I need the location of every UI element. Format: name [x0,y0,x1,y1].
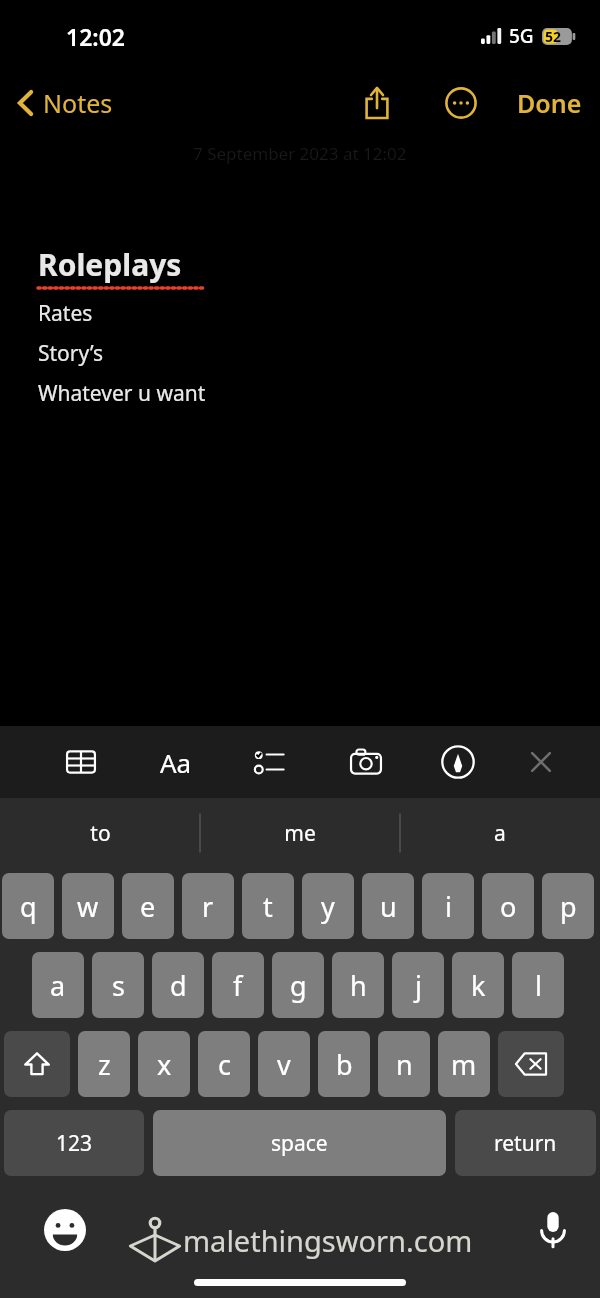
button[interactable]: space [153,1110,446,1176]
staticText: to [90,819,111,848]
button[interactable]: i [422,873,474,939]
staticText: b [336,1046,353,1083]
staticText: Aa [160,745,192,780]
staticText: r [202,888,214,925]
button[interactable]: Table [57,738,105,786]
button[interactable]: Notes [14,80,117,126]
staticText: e [140,888,156,925]
button[interactable]: Camera [342,738,390,786]
button[interactable]: d [152,952,204,1018]
staticText: return [494,1129,557,1158]
staticText: z [98,1046,111,1083]
staticText: 7 September 2023 at 12:02 [193,142,407,165]
button[interactable]: z [78,1031,130,1097]
button[interactable]: g [272,952,324,1018]
button[interactable]: t [242,873,294,939]
button[interactable]: 123 [4,1110,144,1176]
button[interactable]: f [212,952,264,1018]
staticText: 123 [56,1129,93,1158]
staticText: Rates [38,299,93,328]
staticText: Whatever u want [38,379,206,408]
button[interactable]: a [400,798,600,868]
staticText: o [500,888,517,925]
button[interactable]: More options [437,79,485,127]
staticText: w [77,888,99,925]
staticText: t [263,888,273,925]
staticText: 5G [509,23,534,49]
staticText: p [560,888,577,925]
button[interactable]: return [455,1110,596,1176]
staticText: j [415,967,422,1004]
button[interactable]: Checklist [246,738,294,786]
staticText: me [284,819,316,848]
staticText: g [290,967,307,1004]
button[interactable]: b [318,1031,370,1097]
staticText: 52 [545,27,562,46]
button[interactable]: Aa [152,738,200,786]
button[interactable]: k [452,952,504,1018]
button[interactable]: x [138,1031,190,1097]
staticText: h [350,967,367,1004]
button[interactable]: s [92,952,144,1018]
staticText: m [451,1046,477,1083]
staticText: malethingsworn.com [183,1221,473,1260]
staticText: Done [517,86,582,120]
staticText: q [20,888,37,925]
staticText: l [535,967,542,1004]
button[interactable]: o [482,873,534,939]
staticText: x [157,1046,172,1083]
button[interactable]: m [438,1031,490,1097]
staticText: d [170,967,187,1004]
button[interactable]: Markup [434,738,482,786]
staticText: k [471,967,486,1004]
staticText: space [271,1129,328,1158]
button[interactable]: Close keyboard [517,738,565,786]
staticText: s [112,967,125,1004]
staticText: f [233,967,243,1004]
button[interactable]: c [198,1031,250,1097]
button[interactable]: l [512,952,564,1018]
button[interactable]: q [2,873,54,939]
staticText: c [218,1046,231,1083]
button[interactable]: e [122,873,174,939]
button[interactable]: Share [353,79,401,127]
button[interactable]: Emoji [40,1205,90,1255]
button[interactable]: w [62,873,114,939]
staticText: n [396,1046,413,1083]
staticText: Roleplays [38,244,182,285]
button[interactable]: me [200,798,400,868]
button[interactable]: to [0,798,200,868]
button[interactable]: j [392,952,444,1018]
button[interactable]: u [362,873,414,939]
button[interactable]: y [302,873,354,939]
button[interactable]: Done [509,80,590,126]
staticText: y [321,888,335,925]
button[interactable]: n [378,1031,430,1097]
button[interactable]: h [332,952,384,1018]
button[interactable]: v [258,1031,310,1097]
staticText: v [277,1046,291,1083]
button[interactable]: p [542,873,594,939]
staticText: Story’s [38,339,104,368]
button[interactable]: Backspace [498,1031,564,1097]
staticText: u [380,888,397,925]
staticText: i [445,888,452,925]
staticText: a [494,819,506,848]
staticText: a [50,967,66,1004]
staticText: Notes [43,86,113,120]
button[interactable]: a [32,952,84,1018]
button[interactable]: Shift [4,1031,70,1097]
button[interactable]: Dictate [528,1205,578,1255]
staticText: 12:02 [66,21,125,52]
button[interactable]: r [182,873,234,939]
